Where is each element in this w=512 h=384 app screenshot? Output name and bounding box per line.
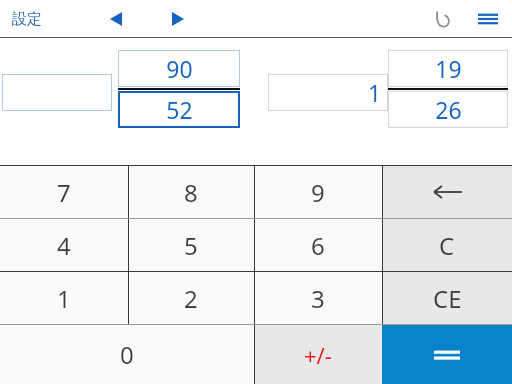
button[interactable]: Previous — [100, 3, 132, 35]
button[interactable]: CE — [382, 272, 512, 324]
button[interactable]: Menu — [470, 1, 506, 37]
button[interactable]: Plus minus — [254, 325, 382, 384]
button[interactable]: 9 — [254, 166, 382, 218]
staticText: 5 — [184, 229, 198, 262]
button[interactable]: 1 — [268, 74, 388, 111]
staticText: CE — [433, 282, 462, 315]
button[interactable]: 設定 — [6, 6, 48, 33]
button[interactable]: 4 — [0, 219, 128, 271]
button[interactable]: Undo — [426, 2, 460, 36]
button[interactable]: 90 — [118, 50, 240, 87]
staticText: 2 — [184, 282, 198, 315]
staticText: 90 — [166, 53, 193, 84]
button[interactable]: 6 — [254, 219, 382, 271]
button[interactable]: 0 — [0, 325, 254, 384]
staticText: 8 — [184, 176, 198, 209]
staticText: +/- — [304, 340, 332, 370]
button[interactable]: Backspace — [382, 166, 512, 218]
staticText: 1 — [368, 77, 382, 108]
button[interactable]: 26 — [388, 91, 508, 128]
button[interactable]: Whole number field — [2, 74, 112, 111]
button[interactable]: Equals — [382, 325, 512, 384]
button[interactable]: 8 — [128, 166, 254, 218]
staticText: 52 — [166, 94, 193, 125]
staticText: 9 — [311, 176, 325, 209]
staticText: 設定 — [12, 10, 42, 29]
staticText: 3 — [311, 282, 325, 315]
button[interactable]: 3 — [254, 272, 382, 324]
staticText: 4 — [57, 229, 71, 262]
button[interactable]: Next — [162, 3, 194, 35]
button[interactable]: 2 — [128, 272, 254, 324]
button[interactable]: 52 — [118, 91, 240, 128]
staticText: 6 — [311, 229, 325, 262]
staticText: 1 — [57, 282, 71, 315]
button[interactable]: 1 — [0, 272, 128, 324]
button[interactable]: C — [382, 219, 512, 271]
staticText: 19 — [435, 53, 462, 84]
button[interactable]: 5 — [128, 219, 254, 271]
staticText: 26 — [435, 94, 462, 125]
button[interactable]: 19 — [388, 50, 508, 87]
button[interactable]: 7 — [0, 166, 128, 218]
staticText: C — [439, 229, 455, 262]
staticText: 7 — [57, 176, 71, 209]
staticText: 0 — [120, 338, 134, 371]
